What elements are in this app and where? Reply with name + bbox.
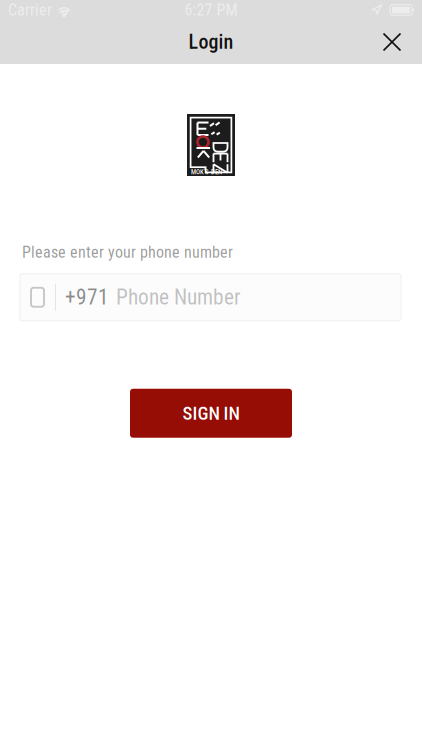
button[interactable]: +971 <box>0 274 422 321</box>
button[interactable]: Close <box>370 20 414 64</box>
button[interactable]: SIGN IN <box>130 389 292 438</box>
staticText: Please enter your phone number <box>22 243 233 262</box>
staticText: MOK'S DEN <box>191 168 222 176</box>
staticText: Phone Number <box>116 285 241 310</box>
staticText: Carrier <box>8 1 52 19</box>
staticText: +971 <box>65 285 109 310</box>
staticText: 6:27 PM <box>184 1 237 19</box>
staticText: SIGN IN <box>182 402 239 424</box>
staticText: Login <box>188 30 233 54</box>
